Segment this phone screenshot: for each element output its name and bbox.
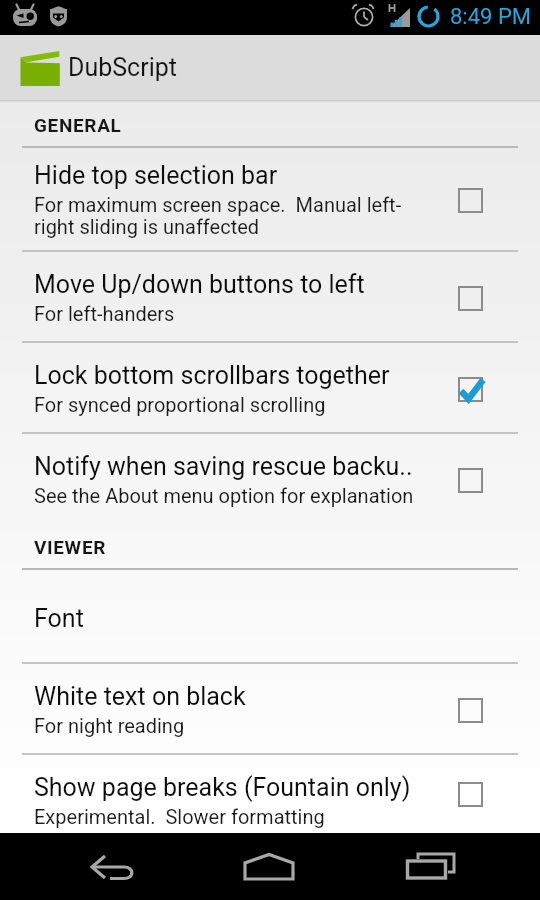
staticText: For left-handers <box>34 302 175 325</box>
button[interactable]: Back <box>54 833 174 900</box>
staticText: Font <box>34 604 84 633</box>
staticText: GENERAL <box>34 114 122 136</box>
staticText: Hide top selection bar <box>34 161 278 190</box>
staticText: 8:49 PM <box>450 4 531 30</box>
button[interactable]: Hide top selection bar <box>0 148 540 252</box>
staticText: For maximum screen space. Manual left- r… <box>34 193 402 239</box>
button[interactable]: Show page breaks (Fountain only) <box>0 755 540 833</box>
button[interactable]: White text on black <box>0 664 540 755</box>
button[interactable]: Font <box>0 570 540 664</box>
staticText: DubScript <box>68 53 177 82</box>
staticText: White text on black <box>34 682 246 711</box>
staticText: For night reading <box>34 714 185 737</box>
button[interactable]: Home <box>210 833 330 900</box>
staticText: Experimental. Slower formatting <box>34 805 325 828</box>
staticText: VIEWER <box>34 536 107 558</box>
button[interactable]: Recent apps <box>370 833 490 900</box>
staticText: Lock bottom scrollbars together <box>34 361 390 390</box>
staticText: Move Up/down buttons to left <box>34 270 365 299</box>
button[interactable]: Notify when saving rescue backu.. <box>0 434 540 525</box>
button[interactable]: Move Up/down buttons to left <box>0 252 540 343</box>
staticText: Notify when saving rescue backu.. <box>34 452 413 481</box>
staticText: See the About menu option for explanatio… <box>34 484 414 507</box>
staticText: Show page breaks (Fountain only) <box>34 773 411 802</box>
staticText: For synced proportional scrolling <box>34 393 326 416</box>
button[interactable]: Lock bottom scrollbars together <box>0 343 540 434</box>
